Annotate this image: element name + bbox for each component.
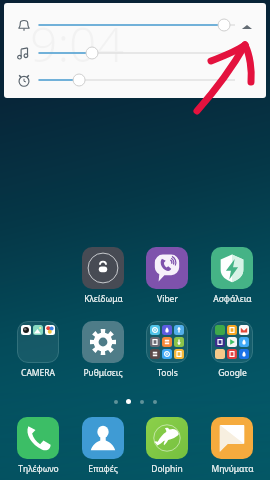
button[interactable]: Alarm volume <box>4 68 266 92</box>
staticText: Μηνύματα <box>211 463 254 475</box>
button[interactable]: Media volume <box>4 41 266 65</box>
staticText: 9:04 <box>30 11 124 76</box>
staticText: Dolphin <box>151 463 183 475</box>
button[interactable]: Κλείδωμα <box>71 247 135 305</box>
button[interactable]: Επαφές <box>71 417 135 475</box>
button[interactable]: Τηλέφωνο <box>6 417 70 475</box>
button[interactable]: Home screen page 3 <box>135 395 148 408</box>
button[interactable]: Ρυθμίσεις <box>71 321 135 379</box>
staticText: Επαφές <box>88 463 118 475</box>
staticText: Τηλέφωνο <box>18 463 59 475</box>
button[interactable]: Viber <box>135 247 199 305</box>
button[interactable]: CAMERA <box>6 321 70 379</box>
staticText: Κλείδωμα <box>84 293 123 305</box>
button[interactable]: Dolphin <box>135 417 199 475</box>
button[interactable]: Tools <box>135 321 199 379</box>
button[interactable]: Home screen page 1 <box>109 395 122 408</box>
staticText: Ρυθμίσεις <box>83 367 123 379</box>
button[interactable]: Google <box>200 321 264 379</box>
staticText: Tools <box>157 367 178 379</box>
button[interactable]: Μηνύματα <box>200 417 264 475</box>
button[interactable]: Home screen page 2 <box>122 395 135 408</box>
staticText: CAMERA <box>21 367 55 379</box>
button[interactable]: Ring volume <box>4 13 266 37</box>
staticText: Ασφάλεια <box>213 293 252 305</box>
button[interactable]: Home screen page 4 <box>148 395 161 408</box>
button[interactable]: Ασφάλεια <box>200 247 264 305</box>
button[interactable]: Collapse volume panel <box>236 16 258 38</box>
staticText: Google <box>218 367 247 379</box>
staticText: Viber <box>157 293 178 305</box>
